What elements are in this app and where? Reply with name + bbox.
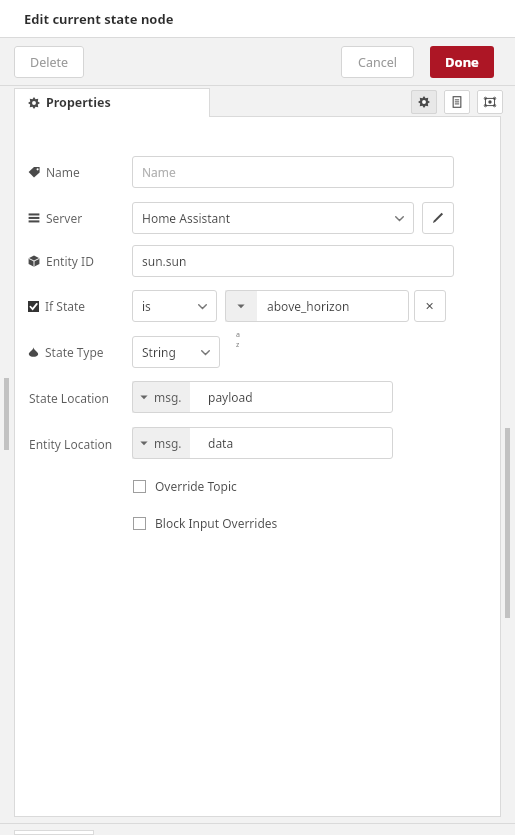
staticText: If State [45, 298, 86, 314]
staticText: is [142, 298, 151, 314]
button[interactable]: above_horizon [225, 290, 409, 322]
button[interactable]: msg. [132, 381, 393, 413]
button[interactable]: msg. [132, 427, 393, 459]
staticText: Delete [30, 54, 69, 71]
button[interactable]: Remove condition [414, 290, 446, 322]
button[interactable]: Delete [14, 46, 84, 78]
staticText: Block Input Overrides [155, 515, 278, 531]
button[interactable]: Settings [411, 90, 437, 114]
staticText: Done [445, 53, 479, 71]
staticText: a [236, 330, 240, 340]
button[interactable]: String [132, 336, 220, 368]
button[interactable]: is [132, 290, 217, 322]
button[interactable]: Edit server [422, 202, 454, 234]
staticText: msg. [154, 389, 182, 405]
staticText: Entity Location [29, 436, 113, 452]
button[interactable]: Appearance [477, 90, 503, 114]
staticText: Server [46, 210, 83, 226]
button[interactable]: Cancel [341, 46, 414, 78]
staticText: msg. [154, 435, 182, 451]
staticText: State Location [29, 390, 110, 406]
button[interactable]: Properties [14, 88, 210, 117]
staticText: data [208, 435, 234, 451]
button[interactable]: Home Assistant [132, 202, 414, 234]
staticText: payload [208, 389, 253, 405]
button[interactable]: Done [430, 46, 494, 78]
staticText: String [142, 344, 176, 360]
staticText: above_horizon [267, 298, 350, 314]
button[interactable]: Name [132, 156, 454, 188]
staticText: z [236, 340, 240, 350]
button[interactable]: Description [444, 90, 470, 114]
button[interactable]: sun.sun [132, 245, 454, 277]
button[interactable]: Block Input Overrides [133, 513, 278, 533]
staticText: ✕ [425, 300, 435, 313]
staticText: Cancel [358, 54, 397, 71]
staticText: Entity ID [46, 253, 94, 269]
staticText: Name [46, 164, 80, 180]
staticText: State Type [45, 344, 104, 360]
staticText: Override Topic [155, 478, 237, 494]
staticText: Edit current state node [24, 10, 174, 28]
button[interactable]: Override Topic [133, 476, 237, 496]
staticText: Properties [46, 94, 111, 111]
staticText: sun.sun [142, 253, 187, 269]
staticText: Name [142, 164, 176, 180]
staticText: Home Assistant [142, 210, 231, 226]
